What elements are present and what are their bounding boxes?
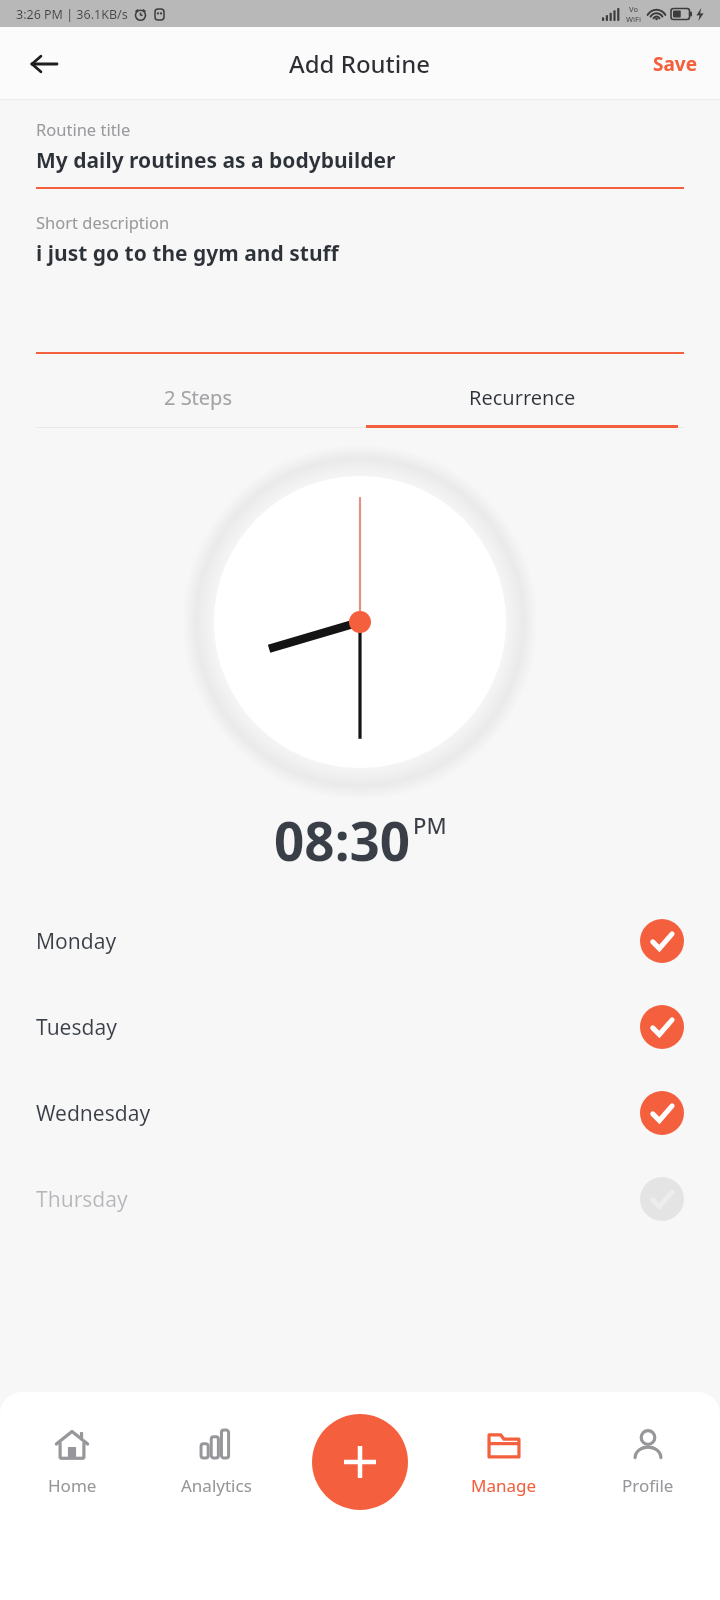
staticText: Recurrence [469, 384, 576, 411]
staticText: Manage [471, 1474, 537, 1497]
button[interactable]: Recurrence [360, 370, 684, 425]
staticText: Tuesday [36, 1013, 117, 1042]
staticText: Vo [629, 4, 639, 14]
staticText: Save [653, 51, 698, 77]
staticText: 3:26 PM | 36.1KB/s [16, 6, 128, 23]
button[interactable]: 2 Steps [36, 370, 360, 425]
button[interactable]: Home [0, 1392, 144, 1532]
staticText: Thursday [36, 1185, 128, 1214]
staticText: WiFi [626, 14, 642, 24]
staticText: Monday [36, 927, 117, 956]
button[interactable]: Profile [576, 1392, 720, 1532]
staticText: 2 Steps [164, 384, 232, 411]
staticText: Profile [622, 1474, 674, 1497]
button[interactable]: Save [643, 43, 708, 85]
button[interactable]: Manage [432, 1392, 576, 1532]
staticText: Add Routine [289, 47, 431, 80]
staticText: PM [413, 810, 447, 840]
button[interactable]: Analytics [144, 1392, 288, 1532]
staticText: Wednesday [36, 1099, 151, 1128]
button[interactable]: Tuesday [0, 984, 720, 1070]
button[interactable]: Thursday [0, 1156, 720, 1242]
staticText: Home [48, 1474, 97, 1497]
button[interactable]: Wednesday [0, 1070, 720, 1156]
button[interactable]: Back [16, 36, 72, 92]
staticText: My daily routines as a bodybuilder [36, 146, 396, 175]
staticText: Analytics [181, 1474, 252, 1497]
staticText: 08:30 [274, 804, 411, 876]
button[interactable]: Monday [0, 898, 720, 984]
staticText: Routine title [36, 118, 131, 140]
staticText: i just go to the gym and stuff [36, 239, 339, 268]
staticText: Short description [36, 211, 170, 233]
button[interactable]: Add [312, 1414, 408, 1510]
